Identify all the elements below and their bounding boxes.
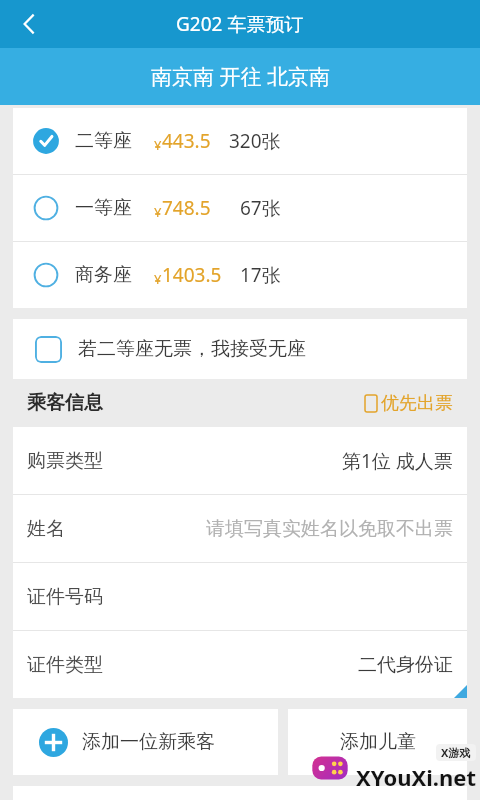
staticText: G202 车票预订 — [176, 11, 304, 37]
button[interactable]: 优先出票 — [365, 392, 453, 415]
button[interactable]: 二等座 — [13, 108, 467, 174]
staticText: ¥ — [154, 136, 162, 154]
staticText: 若二等座无票，我接受无座 — [78, 337, 306, 361]
staticText: 添加儿童 — [340, 730, 416, 754]
button[interactable]: 证件类型 — [27, 631, 453, 698]
staticText: 证件类型 — [27, 653, 103, 677]
staticText: 二等座 — [75, 129, 132, 153]
staticText: ¥ — [154, 270, 162, 288]
button[interactable]: 购票类型 — [27, 427, 453, 494]
button[interactable]: Back — [0, 0, 58, 48]
button[interactable]: 添加儿童 — [288, 709, 467, 775]
staticText: 17张 — [240, 262, 281, 288]
staticText: 商务座 — [75, 263, 132, 287]
button[interactable]: 商务座 — [13, 242, 467, 308]
button[interactable]: 姓名 — [27, 495, 453, 562]
staticText: 姓名 — [27, 517, 65, 541]
staticText: 748.5 — [162, 195, 211, 221]
staticText: 443.5 — [162, 128, 211, 154]
staticText: 67张 — [240, 195, 281, 221]
button[interactable]: 一等座 — [13, 175, 467, 241]
staticText: ¥ — [154, 203, 162, 221]
staticText: X游戏 — [441, 745, 471, 760]
button[interactable]: 若二等座无票，我接受无座 — [13, 319, 467, 379]
staticText: 第1位 成人票 — [342, 448, 453, 474]
staticText: 南京南 开往 北京南 — [151, 62, 330, 91]
staticText: 证件号码 — [27, 585, 103, 609]
staticText: 请填写真实姓名以免取不出票 — [206, 517, 453, 541]
staticText: 一等座 — [75, 196, 132, 220]
staticText: 二代身份证 — [358, 653, 453, 677]
staticText: 添加一位新乘客 — [82, 730, 215, 754]
staticText: 1403.5 — [162, 262, 222, 288]
button[interactable]: 证件号码 — [27, 563, 453, 630]
staticText: 购票类型 — [27, 449, 103, 473]
staticText: 320张 — [229, 128, 281, 154]
staticText: XYouXi.net — [356, 762, 476, 792]
button[interactable]: 添加一位新乘客 — [13, 709, 278, 775]
staticText: 乘客信息 — [27, 391, 103, 415]
staticText: 优先出票 — [381, 392, 453, 415]
